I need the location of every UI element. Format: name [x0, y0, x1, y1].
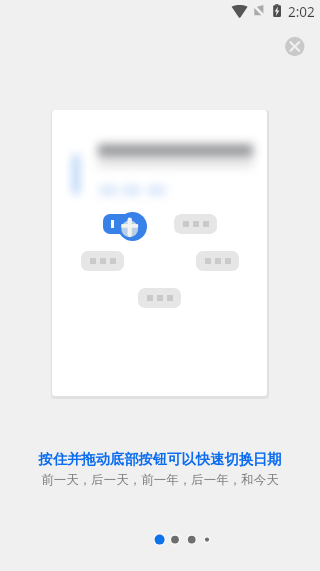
- staticText: 前一天，后一天，前一年，后一年，和今天: [41, 472, 279, 488]
- button[interactable]: Close: [281, 33, 308, 60]
- staticText: 2:02: [288, 3, 315, 21]
- button[interactable]: Page indicator: [148, 528, 216, 552]
- staticText: 按住并拖动底部按钮可以快速切换日期: [38, 450, 282, 468]
